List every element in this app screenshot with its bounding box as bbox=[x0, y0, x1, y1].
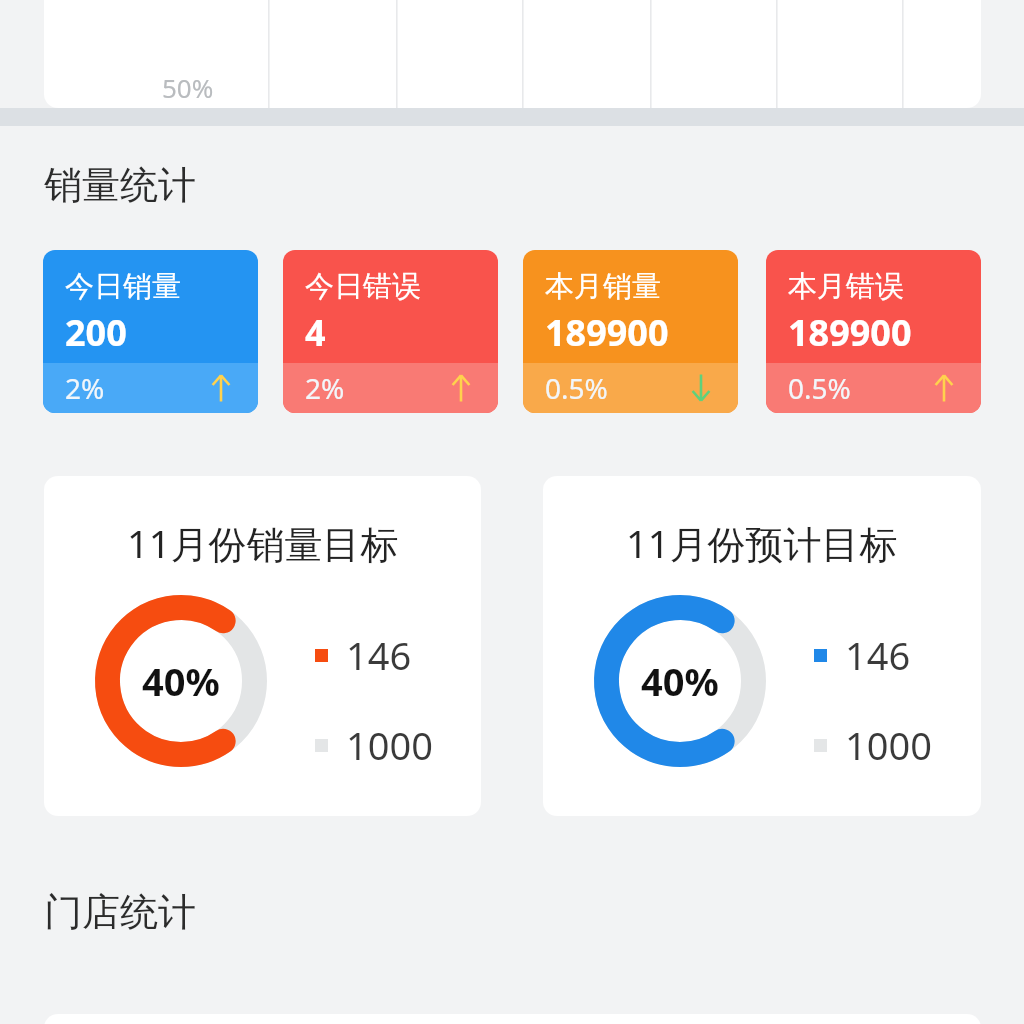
other: Trend up bbox=[206, 373, 236, 403]
staticText: 2% bbox=[65, 369, 105, 407]
staticText: 146 bbox=[346, 629, 412, 681]
staticText: 4 bbox=[305, 308, 326, 357]
staticText: 40% bbox=[142, 655, 220, 707]
staticText: 1000 bbox=[845, 719, 932, 771]
staticText: 0.5% bbox=[788, 369, 851, 407]
button[interactable]: 11月份销量目标 bbox=[44, 476, 481, 816]
staticText: 门店统计 bbox=[44, 888, 196, 936]
staticText: 50% bbox=[162, 70, 214, 105]
staticText: 189900 bbox=[788, 308, 912, 357]
other: Trend up bbox=[929, 373, 959, 403]
staticText: 200 bbox=[65, 308, 127, 357]
other: Trend up bbox=[446, 373, 476, 403]
staticText: 189900 bbox=[545, 308, 669, 357]
staticText: 40% bbox=[641, 655, 719, 707]
other: Trend down bbox=[686, 373, 716, 403]
staticText: 2% bbox=[305, 369, 345, 407]
staticText: 11月份销量目标 bbox=[127, 517, 399, 569]
staticText: 本月错误 bbox=[788, 268, 904, 305]
staticText: 本月销量 bbox=[545, 268, 661, 305]
staticText: 销量统计 bbox=[44, 161, 196, 209]
button[interactable]: 50% bbox=[44, 0, 981, 108]
button[interactable]: 今日销量 bbox=[43, 250, 258, 413]
staticText: 11月份预计目标 bbox=[626, 517, 898, 569]
button[interactable]: 今日错误 bbox=[283, 250, 498, 413]
staticText: 今日错误 bbox=[305, 268, 421, 305]
staticText: 1000 bbox=[346, 719, 433, 771]
staticText: 146 bbox=[845, 629, 911, 681]
button[interactable]: 本月销量 bbox=[523, 250, 738, 413]
button[interactable]: 本月错误 bbox=[766, 250, 981, 413]
staticText: 今日销量 bbox=[65, 268, 181, 305]
staticText: 0.5% bbox=[545, 369, 608, 407]
button[interactable]: 11月份预计目标 bbox=[543, 476, 981, 816]
